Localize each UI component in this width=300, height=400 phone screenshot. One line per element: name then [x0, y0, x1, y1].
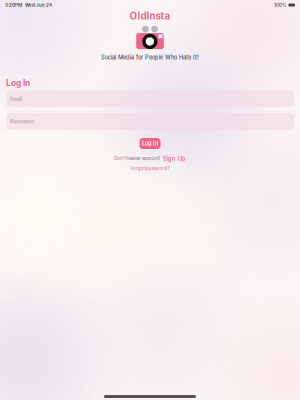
- button[interactable]: Forgot password?: [130, 166, 169, 171]
- button[interactable]: Sign Up: [163, 155, 186, 162]
- staticText: Log In: [142, 140, 158, 147]
- staticText: Log In: [6, 78, 30, 88]
- staticText: Sign Up: [163, 155, 186, 162]
- staticText: Email: [10, 96, 22, 102]
- staticText: Forgot password?: [130, 166, 169, 171]
- staticText: Password: [10, 118, 34, 125]
- staticText: Don't have an account?: [114, 156, 160, 161]
- button[interactable]: Log In: [139, 138, 160, 149]
- staticText: Social Media for People Who Hate It!: [101, 54, 199, 61]
- staticText: 100%: [274, 2, 287, 8]
- staticText: OldInsta: [129, 10, 170, 22]
- staticText: 3:20PM Wed Jun 24: [5, 2, 52, 8]
